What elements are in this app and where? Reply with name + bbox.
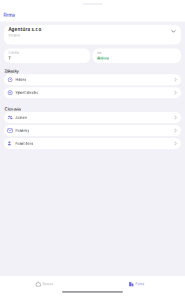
button[interactable]: História [4, 74, 181, 85]
staticText: Firma [3, 12, 15, 18]
staticText: Agentúra s. r. o. [8, 26, 42, 32]
staticText: Stav [97, 51, 101, 55]
staticText: 7 [8, 56, 10, 60]
staticText: Domov [43, 282, 53, 286]
staticText: Aktívna [97, 56, 109, 60]
button[interactable]: Agentúra s. r. o. [4, 25, 181, 44]
staticText: Členovia [4, 106, 20, 112]
button[interactable]: Pozvánky [4, 125, 181, 136]
staticText: Vytvoriť zákazku [15, 91, 38, 95]
staticText: Zoznam [15, 116, 27, 120]
button[interactable]: Zoznam [4, 112, 181, 123]
button[interactable]: Pozvať člena [4, 138, 181, 149]
staticText: Členstvo [8, 51, 19, 55]
button[interactable]: Firma [89, 280, 185, 289]
staticText: Zákazky [4, 68, 18, 74]
button[interactable]: Domov [0, 280, 89, 289]
staticText: Pozvať člena [15, 142, 33, 146]
staticText: Pozvánky [15, 129, 28, 133]
button[interactable]: Vytvoriť zákazku [4, 87, 181, 98]
staticText: História [15, 78, 26, 82]
staticText: Vlastník [8, 33, 20, 37]
staticText: Firma [136, 282, 145, 286]
